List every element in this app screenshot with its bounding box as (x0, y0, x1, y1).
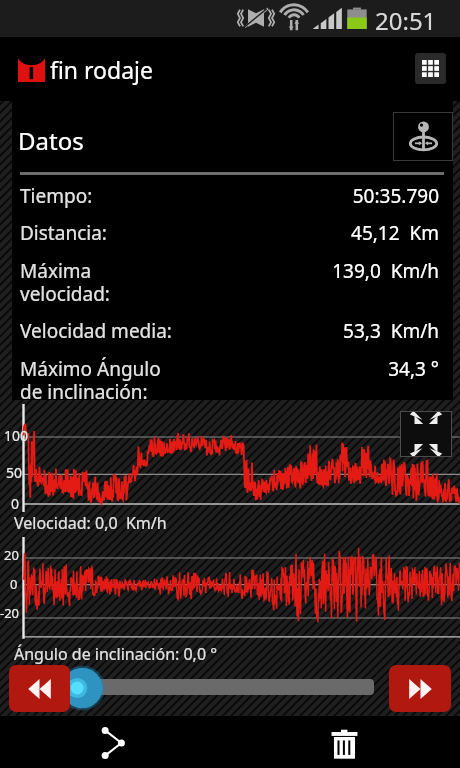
staticText: 0 (11, 494, 20, 513)
button[interactable]: Máxima velocidad: (20, 258, 439, 307)
button[interactable]: Share (89, 719, 137, 767)
staticText: fin rodaje (50, 54, 153, 85)
staticText: 45,12 Km (351, 220, 439, 246)
staticText: Velocidad media: (20, 318, 343, 344)
button[interactable]: Fast forward (389, 665, 451, 712)
button[interactable]: Tiempo: (20, 183, 439, 209)
button[interactable]: Distancia: (20, 220, 439, 246)
staticText: Velocidad: 0,0 Km/h (14, 512, 167, 534)
button[interactable]: Delete (320, 719, 368, 767)
staticText: 53,3 Km/h (343, 318, 439, 344)
button[interactable]: Map view (393, 112, 453, 161)
staticText: Datos (18, 124, 84, 157)
staticText: 0 (10, 575, 18, 593)
button[interactable]: Rewind (9, 665, 70, 712)
staticText: Máximo Ángulo de inclinación: (20, 356, 388, 400)
staticText: 50 (6, 463, 23, 482)
staticText: 50:35.790 (352, 183, 439, 209)
button[interactable]: Máximo Ángulo de inclinación: (20, 356, 439, 400)
staticText: 100 (4, 426, 29, 445)
staticText: Ángulo de inclinación: 0,0 ° (14, 643, 218, 665)
staticText: Máxima velocidad: (20, 258, 332, 307)
button[interactable]: Playback position (82, 679, 374, 695)
staticText: 139,0 Km/h (332, 258, 439, 284)
staticText: Tiempo: (20, 183, 352, 209)
staticText: 34,3 ° (388, 356, 439, 382)
staticText: -20 (0, 604, 20, 622)
button[interactable]: Fullscreen (400, 411, 452, 457)
button[interactable]: Velocidad media: (20, 318, 439, 344)
staticText: 20:51 (375, 4, 437, 37)
button[interactable]: Grid view (415, 53, 446, 84)
staticText: Distancia: (20, 220, 351, 246)
staticText: 20 (4, 546, 19, 564)
